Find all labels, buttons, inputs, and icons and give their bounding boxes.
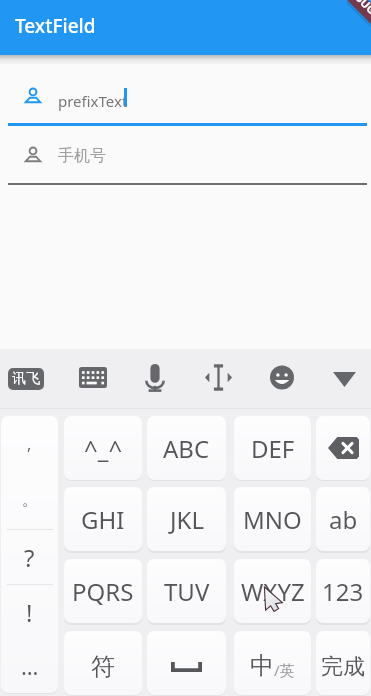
button[interactable]: Move cursor: [197, 354, 240, 401]
button[interactable]: PQRS: [64, 559, 142, 623]
button[interactable]: ?: [1, 529, 58, 585]
button[interactable]: JKL: [147, 487, 226, 551]
button[interactable]: Keyboard: [71, 357, 115, 398]
button[interactable]: 完成: [316, 631, 370, 695]
staticText: prefixText: [58, 91, 128, 111]
staticText: 完成: [321, 653, 365, 681]
button[interactable]: !: [1, 584, 58, 640]
staticText: …: [21, 651, 39, 681]
staticText: ab: [329, 503, 358, 536]
button[interactable]: ,: [1, 416, 58, 472]
button[interactable]: 手机号: [0, 139, 371, 185]
staticText: PQRS: [72, 575, 134, 608]
staticText: ABC: [163, 432, 210, 465]
button[interactable]: 中: [234, 631, 311, 695]
button[interactable]: ab: [316, 487, 370, 551]
button[interactable]: Emoji: [262, 355, 302, 400]
staticText: 手机号: [58, 146, 106, 166]
button[interactable]: TUV: [147, 559, 226, 623]
button[interactable]: MNO: [234, 487, 311, 551]
button[interactable]: [316, 416, 370, 480]
button[interactable]: 。: [1, 472, 58, 528]
button[interactable]: Hide keyboard: [325, 362, 364, 397]
button[interactable]: ABC: [147, 416, 226, 480]
staticText: 123: [322, 575, 364, 608]
button[interactable]: Voice input: [137, 354, 173, 402]
staticText: 。: [22, 490, 38, 510]
button[interactable]: [147, 631, 226, 695]
staticText: TUV: [164, 575, 210, 608]
staticText: ^_^: [84, 432, 123, 465]
staticText: /英: [274, 660, 295, 680]
staticText: TextField: [15, 13, 96, 39]
button[interactable]: GHI: [64, 487, 142, 551]
staticText: WXYZ: [241, 575, 305, 608]
button[interactable]: DEF: [234, 416, 311, 480]
button[interactable]: 符: [64, 631, 142, 695]
staticText: 讯飞: [12, 370, 40, 388]
staticText: ?: [24, 541, 35, 574]
button[interactable]: …: [1, 638, 58, 693]
staticText: DEF: [251, 432, 295, 465]
button[interactable]: prefixText: [0, 79, 371, 126]
staticText: !: [26, 596, 33, 629]
button[interactable]: 123: [316, 559, 370, 623]
button[interactable]: WXYZ: [234, 559, 311, 623]
staticText: JKL: [170, 503, 204, 536]
staticText: DEBUG: [342, 0, 371, 17]
staticText: 中: [250, 651, 274, 681]
button[interactable]: Input method: [8, 368, 44, 390]
staticText: GHI: [81, 503, 125, 536]
staticText: MNO: [243, 503, 302, 536]
button[interactable]: ^_^: [64, 416, 142, 480]
staticText: 符: [91, 652, 115, 682]
staticText: ,: [27, 433, 32, 455]
